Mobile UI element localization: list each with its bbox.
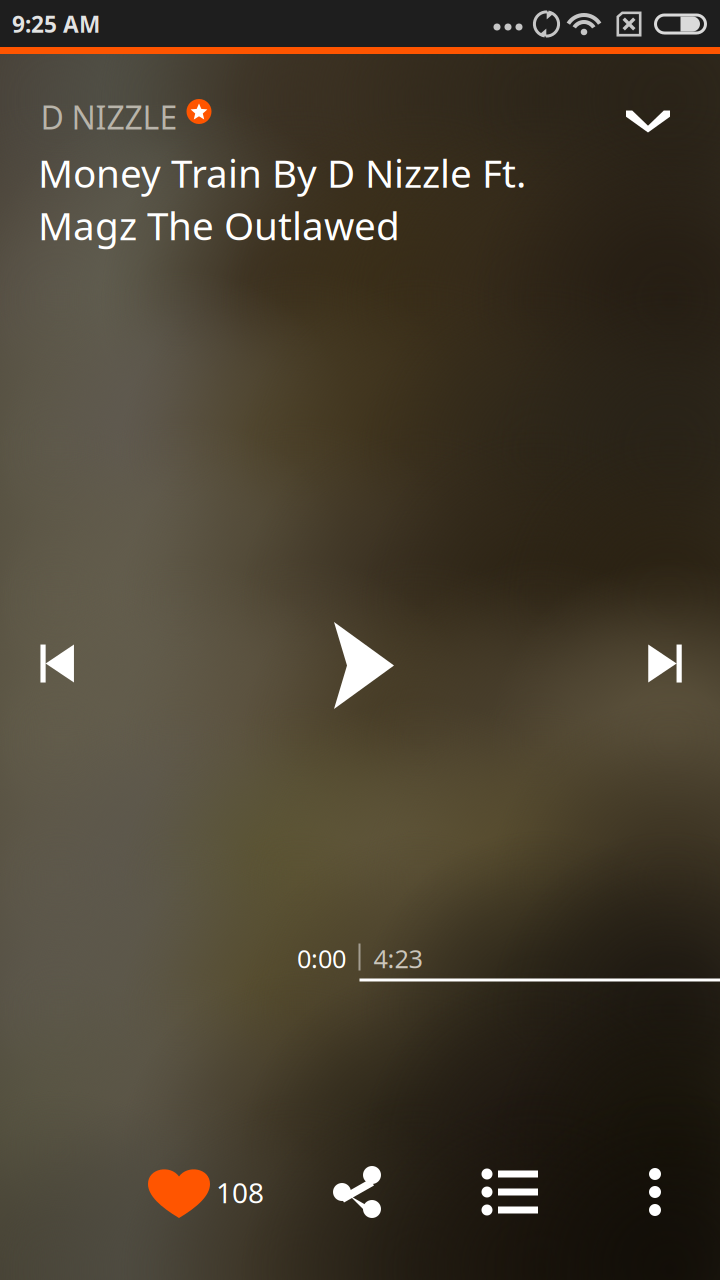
staticText: D NIZZLE bbox=[40, 96, 177, 138]
button[interactable]: Queue bbox=[460, 1142, 560, 1242]
button[interactable]: D NIZZLE bbox=[23, 46, 233, 118]
staticText: 0:00 bbox=[297, 942, 346, 975]
button[interactable]: Previous track bbox=[7, 613, 107, 713]
staticText: Magz The Outlawed bbox=[38, 199, 400, 251]
button[interactable]: Collapse player bbox=[605, 85, 691, 157]
button[interactable]: Play bbox=[294, 595, 434, 735]
button[interactable]: Share bbox=[308, 1142, 408, 1242]
staticText: 4:23 bbox=[373, 942, 422, 975]
staticText: 9:25 AM bbox=[12, 9, 100, 39]
button[interactable]: Next track bbox=[615, 613, 715, 713]
button[interactable]: More options bbox=[615, 1142, 695, 1242]
staticText: 108 bbox=[216, 1174, 264, 1211]
staticText: Money Train By D Nizzle Ft. bbox=[38, 147, 526, 198]
button[interactable]: 108 bbox=[148, 1145, 264, 1240]
